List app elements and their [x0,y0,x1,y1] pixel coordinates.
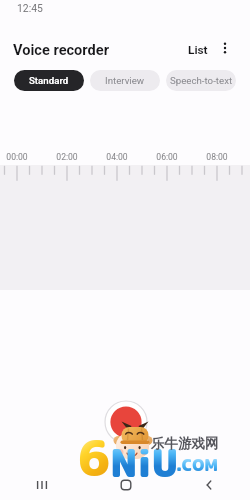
button[interactable]: Standard [14,70,84,91]
staticText: NiU [110,436,179,489]
staticText: 04:00 [97,152,137,162]
staticText: 12:45 [17,2,43,14]
button[interactable]: Interview [90,70,160,91]
button[interactable]: Speech-to-text [166,70,236,91]
staticText: 乐牛游戏网 [151,435,219,452]
staticText: 06:00 [147,152,187,162]
staticText: 02:00 [47,152,87,162]
staticText: Speech-to-text [170,75,233,86]
staticText: Voice recorder [13,41,109,58]
staticText: .COM [176,454,219,476]
staticText: Standard [29,75,69,86]
button[interactable]: More options [214,37,236,59]
staticText: List [188,43,208,57]
staticText: 08:00 [197,152,237,162]
staticText: 6 [78,423,111,491]
button[interactable]: Recents [0,470,84,500]
button[interactable]: Home [84,470,167,500]
button[interactable]: Back [167,470,250,500]
button[interactable]: Record [104,400,148,444]
staticText: Interview [105,75,145,86]
staticText: 00:00 [0,152,37,162]
button[interactable]: List [182,38,214,62]
